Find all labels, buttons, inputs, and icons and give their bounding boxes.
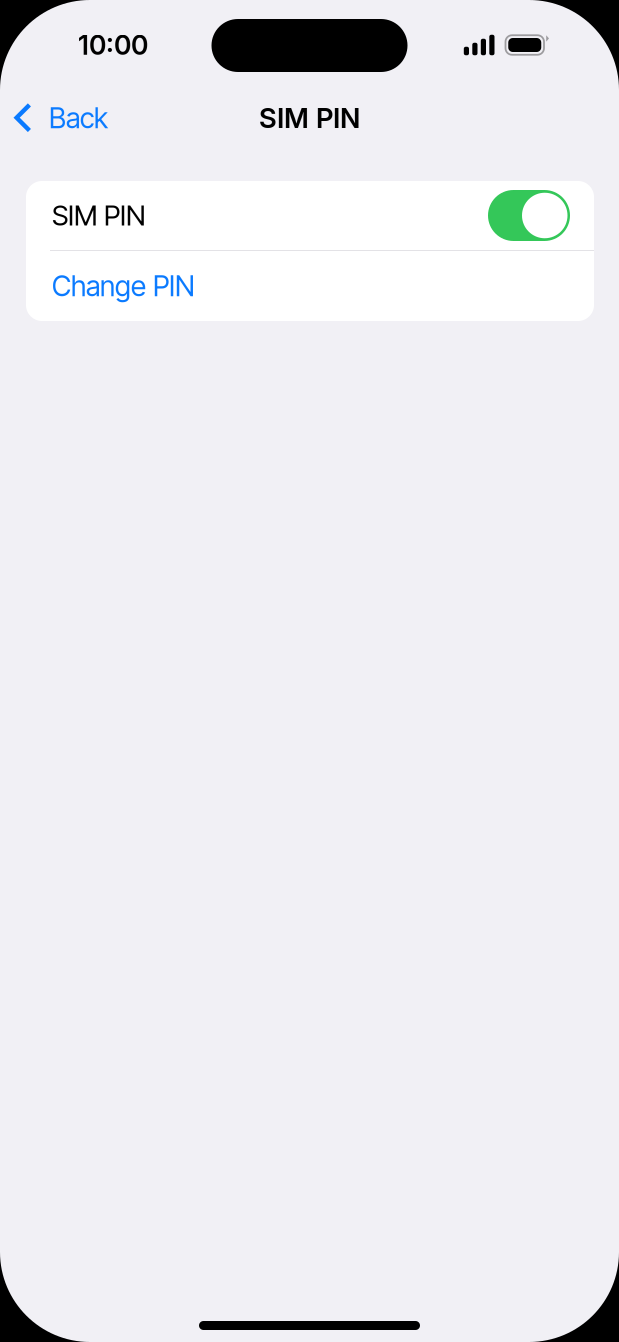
staticText: Change PIN [52, 269, 195, 303]
staticText: SIM PIN [259, 101, 360, 135]
button[interactable]: Back [0, 90, 120, 146]
staticText: 10:00 [78, 29, 148, 61]
staticText: SIM PIN [52, 199, 146, 232]
staticText: Back [49, 101, 108, 135]
button[interactable]: Change PIN [26, 251, 594, 321]
button[interactable]: SIM PIN [26, 181, 594, 250]
